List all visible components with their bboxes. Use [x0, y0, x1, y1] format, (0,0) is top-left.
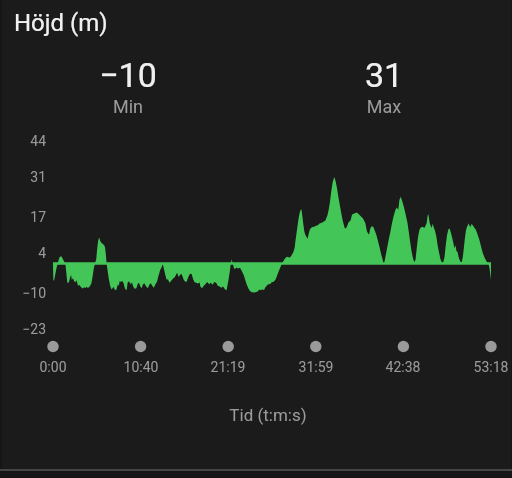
staticText: −10: [0, 55, 256, 95]
staticText: −10: [0, 285, 46, 301]
button[interactable]: −10: [0, 50, 256, 120]
staticText: 31: [256, 55, 512, 95]
staticText: 21:19: [78, 359, 378, 375]
button[interactable]: Elevation profile chart: [8, 126, 504, 388]
staticText: 17: [0, 209, 46, 225]
staticText: Höjd (m): [14, 9, 108, 37]
staticText: Max: [256, 96, 512, 117]
staticText: −23: [0, 321, 46, 337]
button[interactable]: Höjd (m): [0, 0, 512, 46]
staticText: 31:59: [166, 359, 466, 375]
staticText: 42:38: [253, 359, 512, 375]
staticText: 44: [0, 133, 46, 149]
staticText: 53:18: [341, 359, 512, 375]
staticText: Tid (t:m:s): [118, 405, 418, 425]
staticText: Min: [0, 96, 256, 117]
button[interactable]: 31: [256, 50, 512, 120]
staticText: 0:00: [0, 359, 203, 375]
staticText: 31: [0, 169, 46, 185]
staticText: 4: [0, 245, 46, 261]
staticText: 10:40: [0, 359, 291, 375]
